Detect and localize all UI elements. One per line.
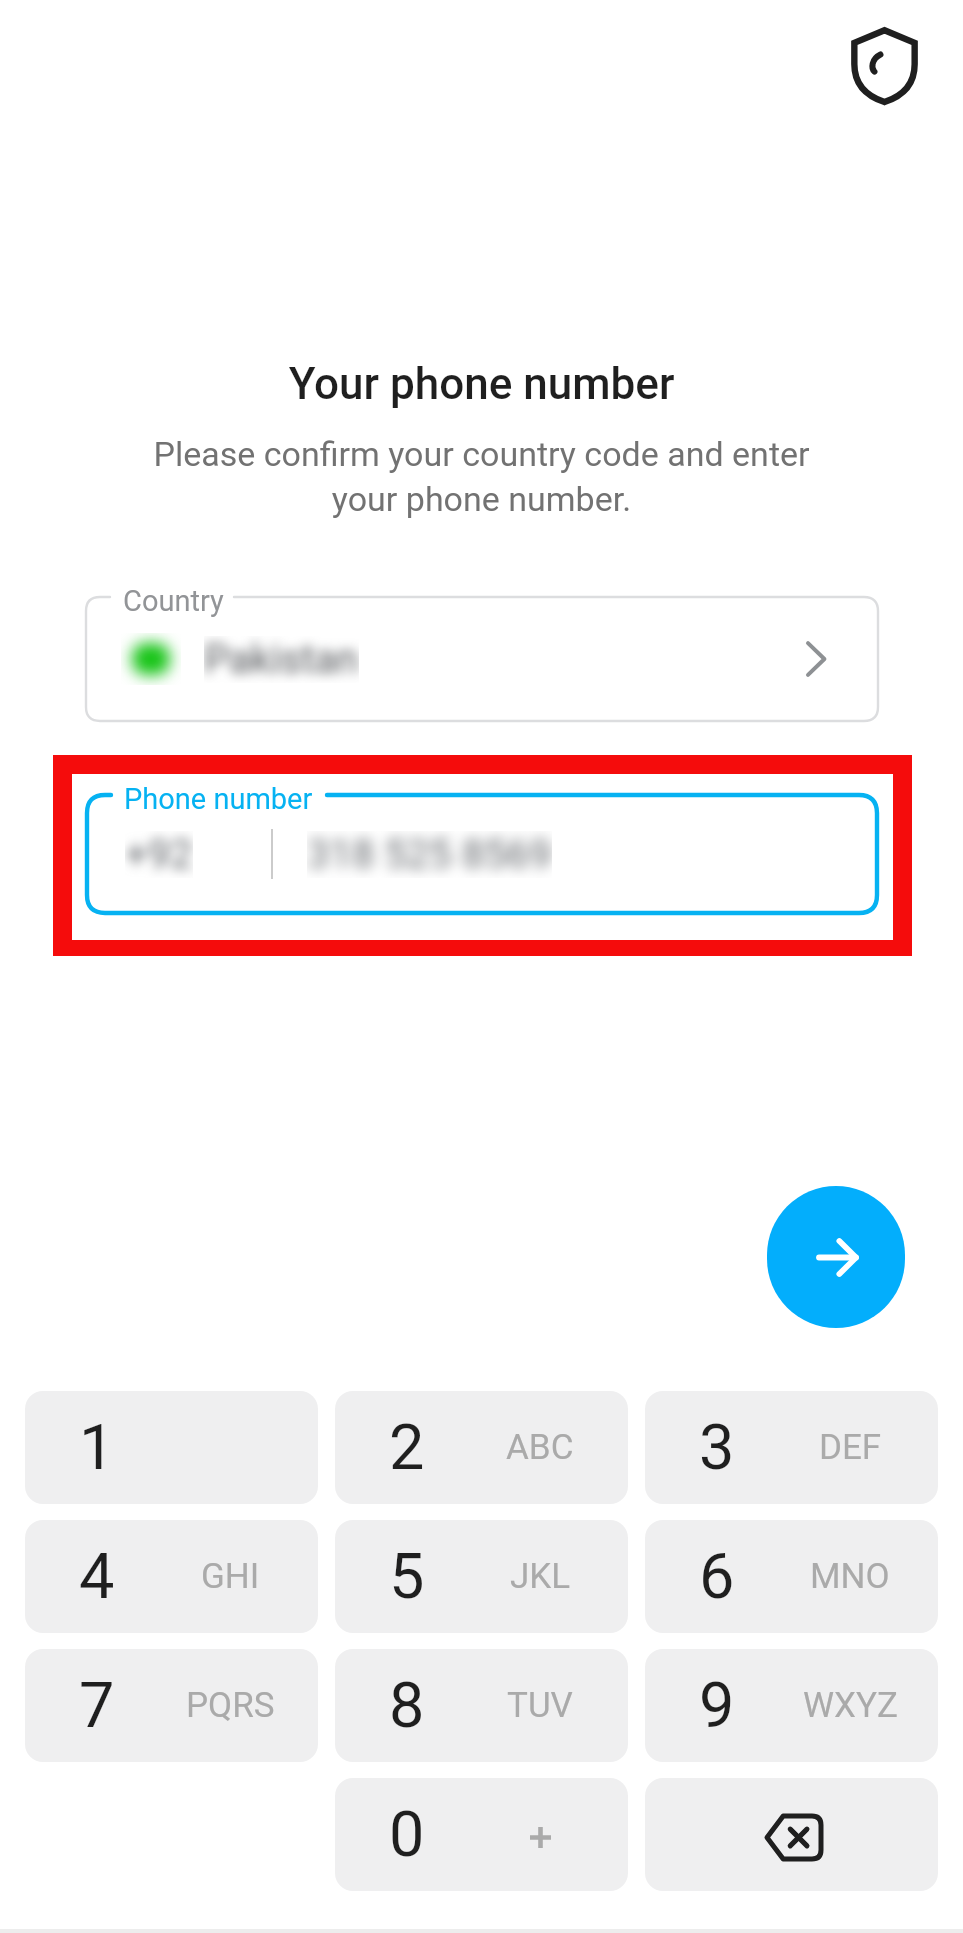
button[interactable]: Privacy: [851, 26, 918, 104]
staticText: 0: [389, 1798, 425, 1872]
staticText: Pakistan: [204, 636, 359, 683]
staticText: 7: [79, 1669, 115, 1743]
staticText: GHI: [201, 1556, 260, 1597]
button[interactable]: 4: [25, 1520, 318, 1633]
button[interactable]: 3: [645, 1391, 938, 1504]
staticText: 4: [79, 1540, 115, 1614]
staticText: 8: [389, 1669, 425, 1743]
staticText: 3: [699, 1411, 735, 1485]
staticText: Your phone number: [0, 358, 963, 410]
button[interactable]: 8: [335, 1649, 628, 1762]
staticText: 318 525 8569: [307, 831, 552, 878]
button[interactable]: Backspace: [645, 1778, 938, 1891]
staticText: Country: [123, 584, 224, 618]
staticText: +92: [125, 831, 193, 878]
button[interactable]: Country: [86, 597, 878, 721]
button[interactable]: 9: [645, 1649, 938, 1762]
button[interactable]: Next: [767, 1186, 905, 1328]
staticText: ABC: [506, 1427, 574, 1468]
staticText: 5: [389, 1540, 425, 1614]
button[interactable]: 1: [25, 1391, 318, 1504]
button[interactable]: 2: [335, 1391, 628, 1504]
staticText: 1: [79, 1411, 115, 1485]
staticText: Please confirm your country code and ent…: [100, 434, 863, 520]
staticText: DEF: [819, 1427, 882, 1468]
staticText: 2: [389, 1411, 425, 1485]
staticText: 6: [699, 1540, 735, 1614]
staticText: MNO: [810, 1556, 890, 1597]
staticText: PQRS: [186, 1685, 275, 1726]
staticText: WXYZ: [803, 1685, 898, 1726]
button[interactable]: 5: [335, 1520, 628, 1633]
staticText: JKL: [510, 1556, 571, 1597]
staticText: 9: [699, 1669, 735, 1743]
button[interactable]: Phone number: [87, 795, 877, 913]
staticText: TUV: [507, 1685, 573, 1726]
staticText: Phone number: [124, 782, 313, 816]
button[interactable]: 0: [335, 1778, 628, 1891]
button[interactable]: 6: [645, 1520, 938, 1633]
button[interactable]: 7: [25, 1649, 318, 1762]
